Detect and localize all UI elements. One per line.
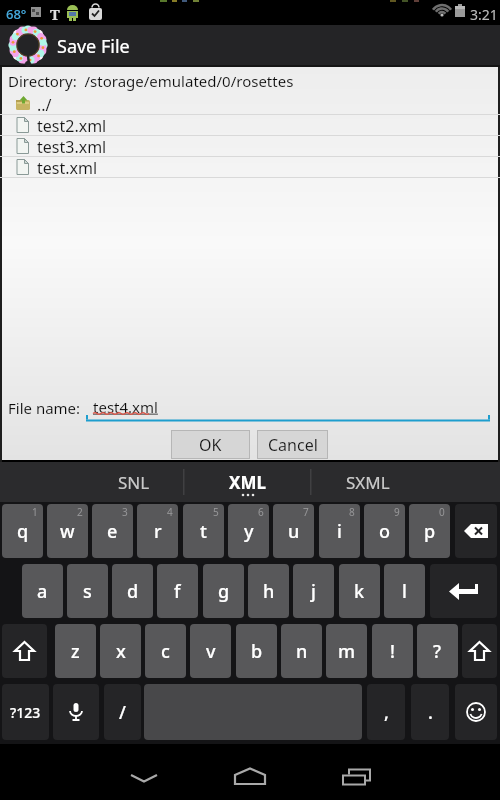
staticText: i	[337, 519, 342, 544]
staticText: /	[119, 700, 126, 725]
button[interactable]: k	[339, 564, 380, 618]
staticText: c	[161, 639, 170, 664]
staticText: t	[200, 519, 207, 544]
button[interactable]: h	[248, 564, 289, 618]
staticText: 5	[213, 505, 219, 519]
button[interactable]: t	[183, 504, 224, 558]
button[interactable]: u	[273, 504, 314, 558]
button[interactable]	[220, 750, 280, 795]
button[interactable]: ?123	[2, 684, 49, 740]
staticText: ?123	[10, 703, 41, 722]
staticText: T	[50, 4, 60, 24]
button[interactable]	[2, 624, 47, 678]
button[interactable]: d	[112, 564, 153, 618]
button[interactable]: n	[281, 624, 322, 678]
button[interactable]: XML	[205, 462, 290, 502]
staticText: 4	[167, 505, 173, 519]
button[interactable]: !	[372, 624, 413, 678]
button[interactable]: j	[293, 564, 334, 618]
staticText: n	[296, 639, 308, 664]
staticText: .	[428, 700, 433, 725]
staticText: f	[174, 579, 181, 604]
staticText: Save File	[57, 34, 130, 59]
staticText: 8	[349, 505, 355, 519]
staticText: Directory: /storage/emulated/0/rosettes	[8, 71, 294, 91]
button[interactable]: c	[145, 624, 186, 678]
button[interactable]	[462, 624, 497, 678]
staticText: o	[379, 519, 390, 544]
button[interactable]	[327, 750, 387, 795]
button[interactable]: .	[411, 684, 449, 740]
button[interactable]: /	[104, 684, 141, 740]
button[interactable]	[455, 684, 497, 740]
button[interactable]: Cancel	[258, 431, 327, 458]
button[interactable]: y	[228, 504, 269, 558]
button[interactable]: test2.xml	[0, 115, 500, 135]
staticText: d	[127, 579, 139, 604]
button[interactable]: f	[157, 564, 198, 618]
button[interactable]: w	[47, 504, 88, 558]
staticText: OK	[199, 434, 222, 456]
staticText: XML	[229, 471, 266, 494]
staticText: q	[17, 519, 29, 544]
button[interactable]: SNL	[91, 462, 176, 502]
staticText: j	[311, 579, 316, 604]
button[interactable]: OK	[172, 431, 249, 458]
staticText: l	[402, 579, 407, 604]
button[interactable]: e	[92, 504, 133, 558]
staticText: test2.xml	[37, 115, 107, 135]
button[interactable]: ../	[0, 94, 500, 114]
button[interactable]: test.xml	[0, 157, 500, 177]
button[interactable]: ,	[367, 684, 405, 740]
staticText: g	[218, 579, 230, 604]
staticText: y	[244, 519, 254, 544]
staticText: v	[206, 639, 216, 664]
staticText: test4.xml	[93, 397, 158, 417]
staticText: z	[71, 639, 80, 664]
staticText: e	[107, 519, 118, 544]
button[interactable]: o	[364, 504, 405, 558]
button[interactable]: q	[2, 504, 43, 558]
staticText: m	[338, 639, 356, 664]
staticText: File name:	[8, 398, 81, 418]
staticText: x	[116, 639, 126, 664]
staticText: test3.xml	[37, 136, 107, 156]
button[interactable]	[114, 750, 174, 795]
staticText: ../	[37, 94, 52, 114]
button[interactable]	[86, 392, 492, 422]
button[interactable]	[430, 564, 497, 618]
staticText: u	[288, 519, 300, 544]
staticText: ,	[384, 700, 389, 725]
button[interactable]	[53, 684, 99, 740]
button[interactable]: v	[190, 624, 231, 678]
button[interactable]: test3.xml	[0, 136, 500, 156]
button[interactable]: s	[67, 564, 108, 618]
staticText: 68°	[6, 5, 27, 23]
button[interactable]: i	[319, 504, 360, 558]
button[interactable]: ?	[417, 624, 458, 678]
staticText: 1	[32, 505, 38, 519]
staticText: p	[424, 519, 436, 544]
button[interactable]	[455, 504, 497, 558]
staticText: 3:21	[470, 5, 498, 24]
button[interactable]: r	[137, 504, 178, 558]
button[interactable]: z	[55, 624, 96, 678]
button[interactable]: a	[22, 564, 63, 618]
staticText: 2	[77, 505, 83, 519]
button[interactable]: p	[409, 504, 450, 558]
button[interactable]: g	[203, 564, 244, 618]
button[interactable]: b	[236, 624, 277, 678]
button[interactable]: m	[326, 624, 367, 678]
button[interactable]: x	[100, 624, 141, 678]
staticText: ?	[433, 639, 442, 664]
button[interactable]: l	[384, 564, 425, 618]
staticText: SXML	[346, 471, 390, 494]
staticText: w	[60, 519, 75, 544]
staticText: a	[37, 579, 48, 604]
staticText: 7	[303, 505, 309, 519]
staticText: h	[263, 579, 275, 604]
button[interactable]: SXML	[325, 462, 410, 502]
staticText: r	[154, 519, 162, 544]
staticText: 3	[122, 505, 128, 519]
